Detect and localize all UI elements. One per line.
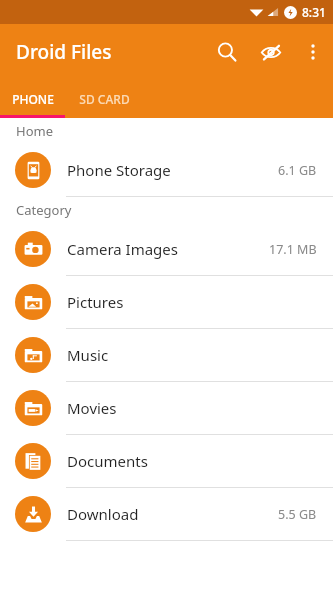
staticText: 8:31: [302, 4, 326, 20]
button[interactable]: Search: [205, 30, 249, 74]
staticText: Home: [16, 122, 53, 140]
button[interactable]: Camera Images: [0, 223, 333, 275]
button[interactable]: Phone Storage: [0, 144, 333, 196]
button[interactable]: Show hidden files: [249, 30, 293, 74]
staticText: PHONE: [12, 91, 54, 107]
button[interactable]: PHONE: [0, 80, 65, 118]
staticText: Download: [67, 504, 278, 524]
staticText: Documents: [67, 451, 317, 471]
staticText: 6.1 GB: [278, 162, 317, 179]
staticText: Music: [67, 345, 317, 365]
button[interactable]: Movies: [0, 382, 333, 434]
staticText: Phone Storage: [67, 160, 278, 180]
staticText: Camera Images: [67, 239, 269, 259]
button[interactable]: Download: [0, 488, 333, 540]
staticText: 5.5 GB: [278, 506, 317, 523]
staticText: 17.1 MB: [269, 241, 317, 258]
button[interactable]: Pictures: [0, 276, 333, 328]
staticText: Droid Files: [16, 39, 112, 65]
staticText: Pictures: [67, 292, 317, 312]
button[interactable]: More options: [293, 32, 333, 72]
staticText: Movies: [67, 398, 317, 418]
staticText: SD CARD: [79, 91, 130, 107]
button[interactable]: SD CARD: [65, 80, 143, 118]
button[interactable]: Documents: [0, 435, 333, 487]
staticText: Category: [16, 201, 72, 219]
button[interactable]: Music: [0, 329, 333, 381]
